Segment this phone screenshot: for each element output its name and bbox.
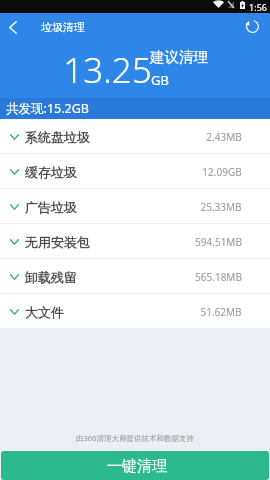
- button[interactable]: 缓存垃圾: [0, 154, 270, 189]
- staticText: 25.33MB: [200, 200, 242, 214]
- button[interactable]: Refresh: [239, 13, 265, 39]
- button[interactable]: 无用安装包: [0, 224, 270, 259]
- staticText: 一键清理: [107, 457, 167, 476]
- staticText: 594.51MB: [195, 235, 242, 249]
- staticText: 共发现:15.2GB: [6, 100, 89, 117]
- staticText: 51.62MB: [200, 305, 242, 319]
- button[interactable]: 系统盘垃圾: [0, 119, 270, 154]
- staticText: 565.18MB: [195, 270, 242, 284]
- staticText: 2.43MB: [206, 130, 242, 144]
- staticText: 广告垃圾: [25, 199, 77, 215]
- staticText: 大文件: [25, 304, 64, 320]
- staticText: 缓存垃圾: [25, 164, 77, 180]
- staticText: 大文件: [25, 304, 64, 320]
- button[interactable]: 卸载残留: [0, 259, 270, 294]
- staticText: 无用安装包: [25, 234, 90, 250]
- staticText: 13.25: [63, 46, 152, 94]
- button[interactable]: Back: [0, 14, 26, 40]
- staticText: 建议清理: [150, 48, 208, 66]
- staticText: 12.09GB: [202, 165, 242, 179]
- button[interactable]: 大文件: [0, 294, 270, 329]
- staticText: 1:56: [249, 1, 267, 13]
- staticText: GB: [151, 71, 169, 89]
- staticText: 由360清理大师提供技术和数据支持: [76, 433, 194, 443]
- staticText: 垃圾清理: [41, 20, 85, 34]
- staticText: 系统盘垃圾: [25, 129, 90, 145]
- staticText: 广告垃圾: [25, 199, 77, 215]
- staticText: 缓存垃圾: [25, 164, 77, 180]
- button[interactable]: 一键清理: [1, 451, 269, 480]
- staticText: 卸载残留: [25, 269, 77, 285]
- button[interactable]: 广告垃圾: [0, 189, 270, 224]
- staticText: 无用安装包: [25, 234, 90, 250]
- staticText: 系统盘垃圾: [25, 129, 90, 145]
- staticText: 卸载残留: [25, 269, 77, 285]
